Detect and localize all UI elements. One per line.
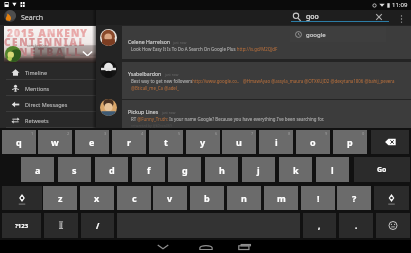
button[interactable]: o: [296, 130, 330, 154]
staticText: Celene Harrelson: [128, 38, 170, 45]
button[interactable]: y: [186, 130, 220, 154]
button[interactable]: g: [168, 157, 201, 182]
staticText: q: [16, 136, 22, 148]
button[interactable]: ,: [303, 213, 336, 238]
button[interactable]: Timeline: [0, 64, 96, 80]
staticText: Mentions: [25, 85, 50, 92]
button[interactable]: e: [75, 130, 109, 154]
staticText: n: [241, 192, 247, 204]
button[interactable]: Home: [186, 240, 226, 253]
staticText: 7: [251, 131, 254, 136]
staticText: a: [35, 164, 41, 176]
staticText: CENTENNIAL: [4, 35, 86, 49]
button[interactable]: l: [316, 157, 349, 182]
staticText: 4: [141, 131, 144, 136]
button[interactable]: q: [2, 130, 36, 154]
other: Switch account: [82, 48, 93, 59]
button[interactable]: b: [190, 186, 224, 210]
button[interactable]: c: [117, 186, 151, 210]
staticText: h: [219, 164, 225, 176]
button[interactable]: u: [222, 130, 256, 154]
button[interactable]: Go: [354, 157, 410, 182]
button[interactable]: n: [227, 186, 261, 210]
staticText: 1: [31, 131, 34, 136]
button[interactable]: v: [153, 186, 187, 210]
staticText: ,: [318, 220, 321, 231]
button[interactable]: /: [81, 213, 114, 238]
button[interactable]: z: [43, 186, 77, 210]
staticText: just now: [165, 72, 179, 77]
staticText: x: [94, 192, 100, 204]
button[interactable]: Back: [143, 240, 183, 253]
staticText: Timeline: [25, 69, 48, 76]
button[interactable]: m: [264, 186, 298, 210]
button[interactable]: a: [21, 157, 54, 182]
staticText: Look How Easy It Is To Do A Search On Go…: [131, 46, 405, 52]
staticText: Retweets: [25, 117, 49, 124]
button[interactable]: f: [132, 157, 165, 182]
button[interactable]: k: [279, 157, 312, 182]
button[interactable]: ?123: [2, 213, 41, 238]
button[interactable]: Ysabelbardon: [122, 62, 411, 99]
staticText: i: [275, 136, 278, 148]
button[interactable]: j: [242, 157, 275, 182]
staticText: 3: [104, 131, 107, 136]
button[interactable]: Direct Messages: [0, 96, 96, 112]
staticText: y: [200, 136, 206, 148]
staticText: somebody here: [27, 44, 49, 48]
staticText: just now: [162, 110, 176, 115]
button[interactable]: Mentions: [0, 80, 96, 96]
staticText: .: [355, 220, 358, 231]
button[interactable]: r: [112, 130, 146, 154]
other: Search: [292, 12, 302, 22]
staticText: /: [96, 220, 100, 231]
staticText: goo: [306, 12, 319, 22]
staticText: f: [147, 164, 151, 176]
button[interactable]: Shift: [374, 186, 409, 210]
button[interactable]: Backspace: [371, 130, 409, 154]
button[interactable]: Pickup Lines: [122, 100, 411, 128]
button[interactable]: h: [205, 157, 238, 182]
staticText: e: [89, 136, 95, 148]
staticText: ?123: [15, 222, 29, 230]
staticText: NETBALL: [19, 45, 83, 59]
button[interactable]: Shift: [2, 186, 42, 210]
button[interactable]: Change input method: [44, 213, 78, 238]
staticText: Best way to get new followershttp://www.…: [131, 78, 405, 91]
staticText: l: [331, 164, 334, 176]
button[interactable]: google: [290, 27, 386, 42]
button[interactable]: i: [259, 130, 293, 154]
staticText: Pickup Lines: [128, 108, 159, 115]
staticText: 11:09: [392, 1, 408, 9]
staticText: g: [182, 164, 188, 176]
button[interactable]: Recent apps: [224, 240, 264, 253]
button[interactable]: w: [38, 130, 72, 154]
button[interactable]: More options: [394, 10, 408, 27]
staticText: google: [306, 31, 326, 39]
button[interactable]: Retweets: [0, 112, 96, 128]
staticText: just now: [173, 40, 187, 45]
button[interactable]: x: [80, 186, 114, 210]
staticText: 2015 ANKENY: [7, 26, 89, 40]
button[interactable]: ?: [337, 186, 371, 210]
button[interactable]: d: [95, 157, 128, 182]
staticText: m: [277, 192, 286, 204]
staticText: u: [236, 136, 242, 148]
staticText: Go: [377, 165, 387, 175]
button[interactable]: !: [301, 186, 335, 210]
button[interactable]: p: [333, 130, 367, 154]
staticText: Search: [21, 13, 44, 23]
staticText: p: [347, 136, 353, 148]
button[interactable]: Emoji: [376, 213, 410, 238]
button[interactable]: Celene Harrelson: [122, 30, 411, 59]
other: Clear search: [375, 13, 383, 21]
button[interactable]: .: [339, 213, 373, 238]
staticText: v: [167, 192, 173, 204]
staticText: 0: [362, 131, 365, 136]
button[interactable]: [5, 46, 21, 62]
button[interactable]: s: [58, 157, 91, 182]
staticText: r: [127, 136, 132, 148]
button[interactable]: t: [149, 130, 183, 154]
staticText: retweeted by @kDrow069: [131, 123, 172, 128]
